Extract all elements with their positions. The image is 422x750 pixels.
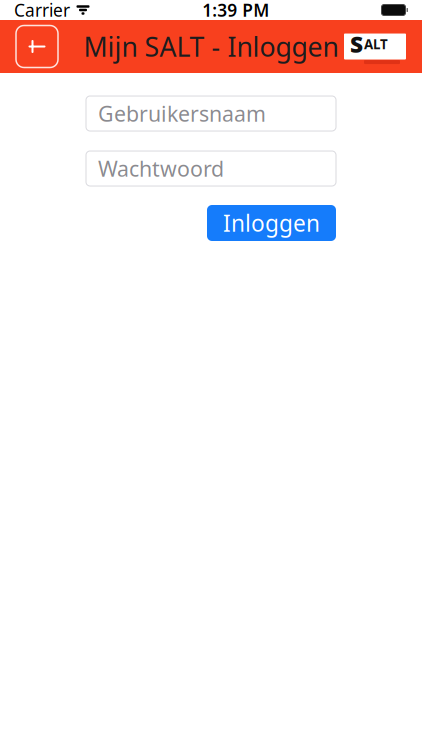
button[interactable]: Gebruikersnaam [86,96,336,131]
staticText: 1:39 PM [202,0,269,21]
staticText: ALT [364,35,388,53]
button[interactable]: Wachtwoord [86,151,336,186]
staticText: Gebruikersnaam [98,99,266,128]
button[interactable]: Back [16,25,58,67]
staticText: Mijn SALT - Inloggen [83,29,338,64]
staticText: S [350,29,363,59]
staticText: Inloggen [223,208,320,238]
staticText: Carrier [14,0,70,21]
button[interactable]: Inloggen [207,205,336,241]
staticText: Wachtwoord [98,154,224,183]
